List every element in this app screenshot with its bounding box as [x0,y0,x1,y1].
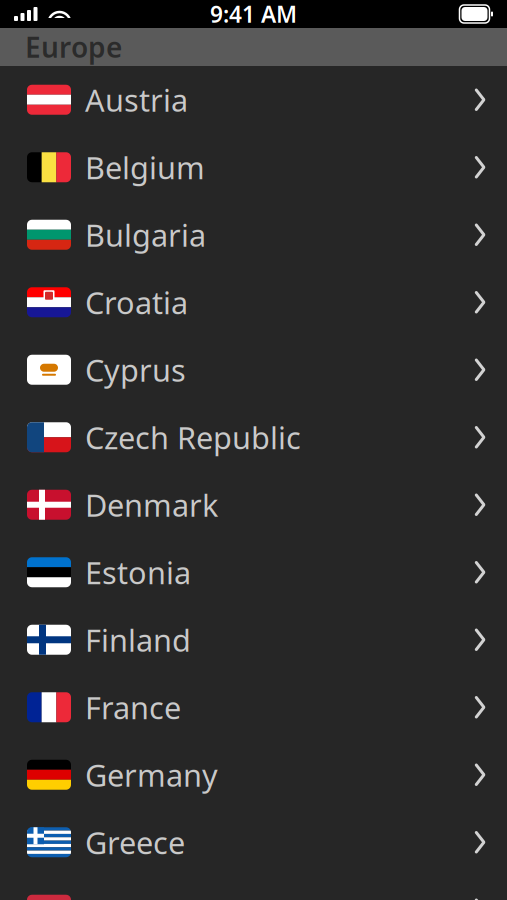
button[interactable]: Finland [0,606,507,673]
staticText: Belgium [85,147,205,188]
staticText: France [85,687,181,728]
button[interactable]: Croatia [0,268,507,336]
staticText: Croatia [85,282,188,323]
staticText: Denmark [85,484,218,525]
staticText: 9:41 AM [210,0,297,29]
staticText: Germany [85,754,218,795]
button[interactable]: Hungary [0,876,507,900]
button[interactable]: Germany [0,741,507,808]
button[interactable]: Denmark [0,471,507,538]
button[interactable]: Bulgaria [0,201,507,268]
staticText: Austria [85,79,188,120]
staticText: Europe [25,28,122,66]
staticText: Cyprus [85,349,186,390]
button[interactable]: Greece [0,808,507,876]
button[interactable]: Cyprus [0,336,507,403]
button[interactable]: Estonia [0,538,507,606]
button[interactable]: France [0,673,507,741]
staticText: Czech Republic [85,417,301,458]
staticText: Finland [85,619,191,660]
button[interactable]: Belgium [0,133,507,201]
staticText: Estonia [85,552,191,593]
button[interactable]: Austria [0,66,507,133]
staticText: Bulgaria [85,214,206,255]
button[interactable]: Czech Republic [0,403,507,471]
staticText: Greece [85,822,185,863]
